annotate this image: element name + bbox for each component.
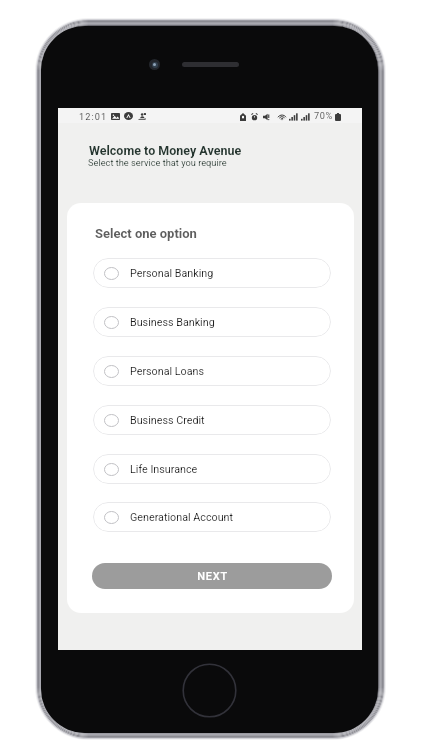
staticText: Personal Loans (130, 365, 205, 378)
staticText: Generational Account (130, 511, 234, 524)
staticText: NEXT (197, 570, 228, 583)
staticText: Personal Banking (130, 267, 214, 280)
staticText: Life Insurance (130, 463, 198, 476)
staticText: 70% (314, 110, 333, 121)
button[interactable]: Personal Loans (93, 356, 331, 386)
staticText: Select the service that you require (88, 157, 227, 168)
button[interactable]: Business Banking (93, 307, 331, 337)
staticText: Welcome to Money Avenue (89, 143, 242, 158)
button[interactable]: Personal Banking (93, 258, 331, 288)
staticText: Business Credit (130, 414, 205, 427)
staticText: Business Banking (130, 316, 215, 329)
staticText: 12:01 (79, 111, 108, 122)
button[interactable]: Life Insurance (93, 454, 331, 484)
staticText: Select one option (95, 226, 197, 241)
button[interactable]: NEXT (92, 563, 332, 589)
button[interactable]: Generational Account (93, 502, 331, 532)
button[interactable]: Business Credit (93, 405, 331, 435)
